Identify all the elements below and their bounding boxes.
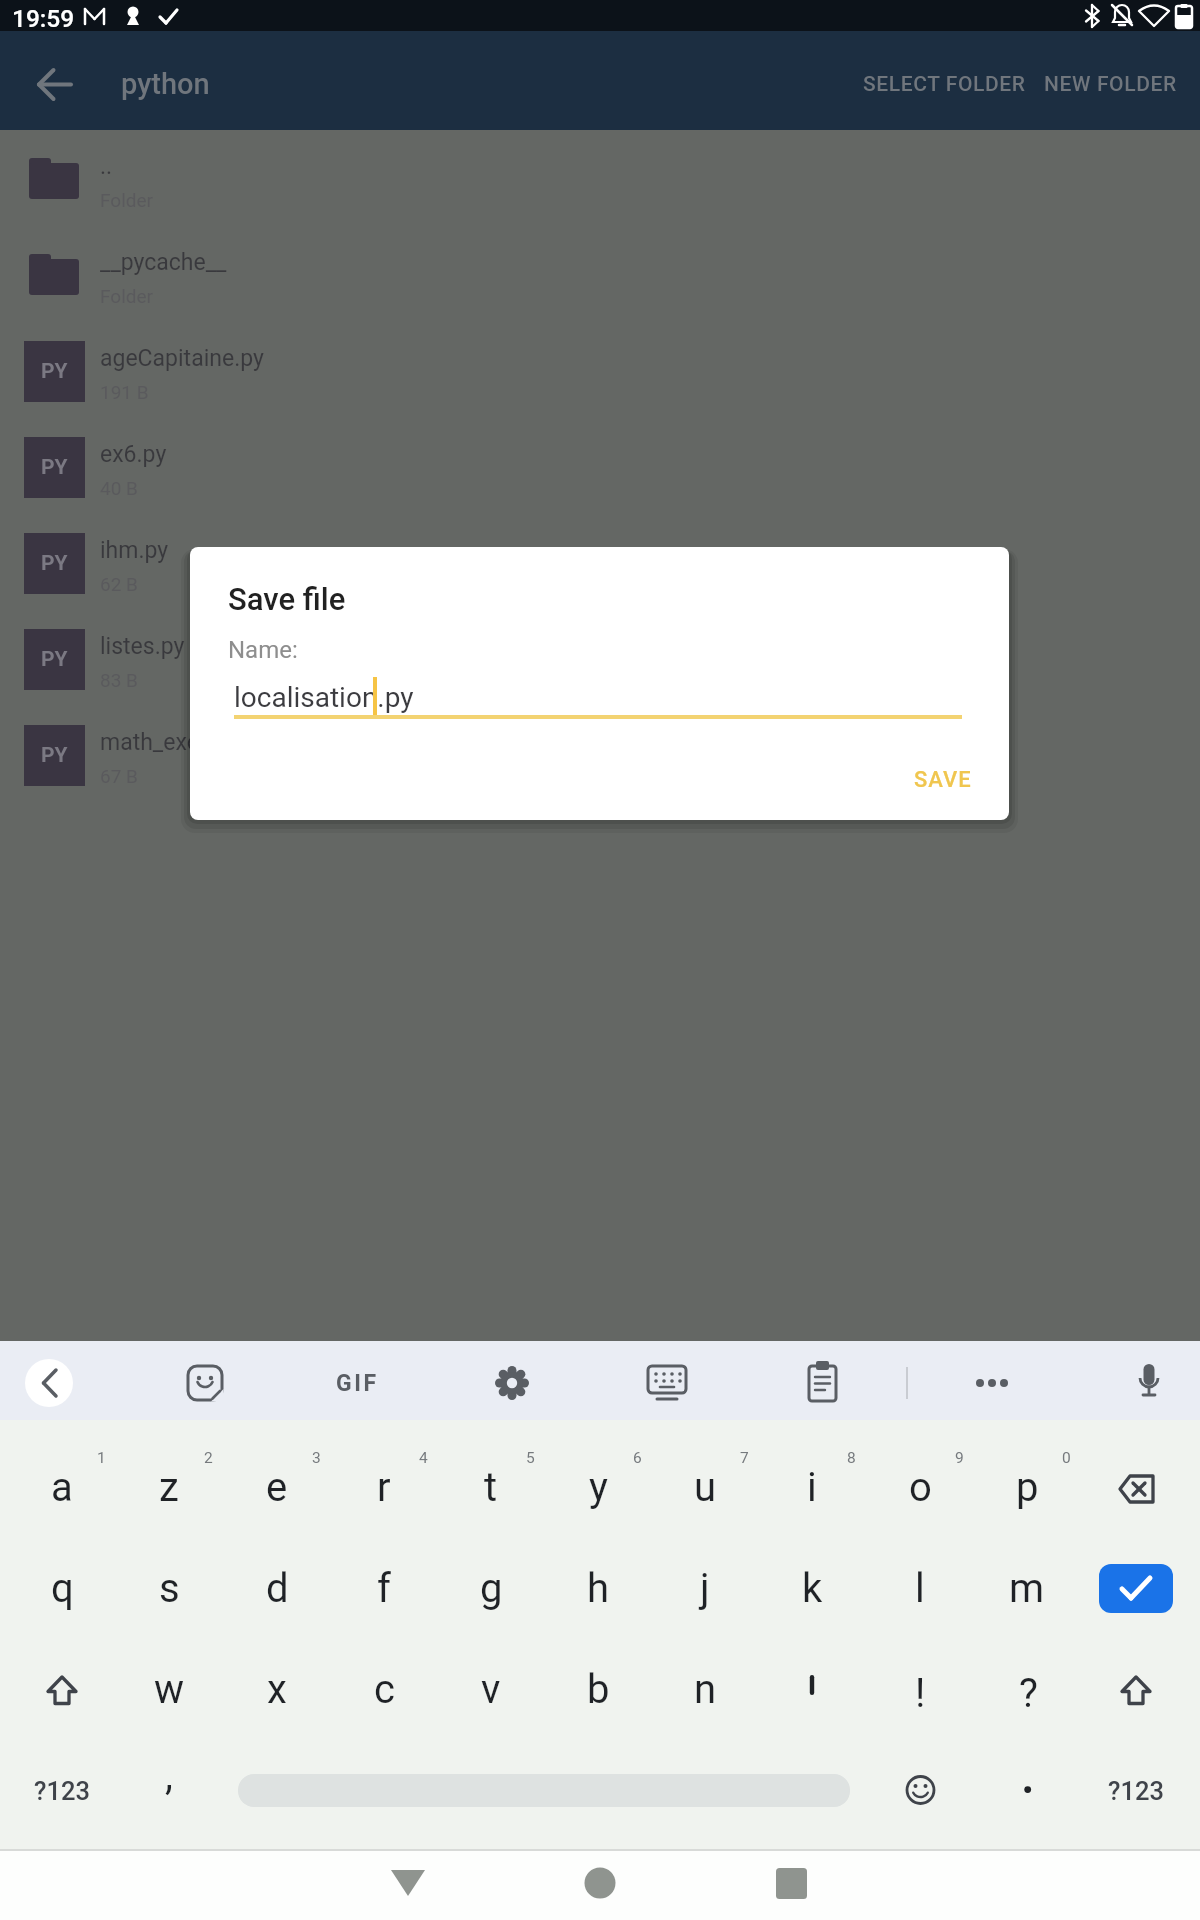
staticText: 191 B — [100, 381, 149, 403]
button[interactable]: x — [224, 1639, 330, 1739]
button[interactable]: d — [224, 1538, 330, 1638]
button[interactable]: SELECT FOLDER — [860, 67, 1026, 101]
button[interactable]: z — [116, 1437, 222, 1537]
staticText: 62 B — [100, 573, 138, 595]
staticText: .. — [100, 153, 113, 180]
button[interactable] — [962, 1353, 1022, 1413]
button[interactable]: ? — [975, 1643, 1081, 1743]
button[interactable] — [792, 1353, 852, 1413]
button[interactable] — [9, 1641, 115, 1741]
button[interactable] — [1083, 1437, 1189, 1537]
button[interactable]: n — [652, 1639, 758, 1739]
button[interactable] — [880, 1741, 960, 1841]
staticText: t — [484, 1464, 498, 1511]
staticText: __pycache__ — [100, 249, 227, 276]
staticText: ! — [915, 1670, 926, 1717]
button[interactable]: ?123 — [1083, 1741, 1189, 1841]
button[interactable] — [0, 518, 1200, 614]
button[interactable] — [0, 710, 1200, 806]
button[interactable]: v — [438, 1639, 544, 1739]
staticText: w — [154, 1666, 185, 1713]
button[interactable]: s — [116, 1538, 222, 1638]
staticText: PY — [41, 743, 68, 768]
staticText: python — [121, 67, 210, 101]
staticText: 67 B — [100, 765, 138, 787]
button[interactable]: , — [116, 1725, 222, 1825]
button[interactable]: ! — [867, 1643, 973, 1743]
staticText: c — [374, 1666, 395, 1713]
button[interactable]: j — [652, 1538, 758, 1638]
button[interactable]: q — [9, 1538, 115, 1638]
button[interactable] — [383, 1858, 433, 1908]
staticText: s — [159, 1565, 180, 1612]
button[interactable] — [0, 230, 1200, 326]
staticText: Save file — [228, 581, 346, 617]
staticText: a — [51, 1464, 73, 1511]
button[interactable] — [575, 1858, 625, 1908]
button[interactable] — [175, 1353, 235, 1413]
button[interactable]: ?123 — [9, 1741, 115, 1841]
button[interactable] — [327, 1353, 387, 1413]
staticText: math_exo.py — [100, 729, 230, 756]
staticText: 19:59 — [12, 4, 75, 33]
staticText: 1 — [97, 1449, 106, 1467]
button[interactable]: b — [545, 1639, 651, 1739]
staticText: ?123 — [34, 1776, 90, 1806]
button[interactable]: c — [331, 1639, 437, 1739]
staticText: 3 — [312, 1449, 321, 1467]
staticText: GIF — [336, 1370, 379, 1397]
button[interactable] — [0, 422, 1200, 518]
button[interactable]: f — [331, 1538, 437, 1638]
button[interactable]: a — [9, 1437, 115, 1537]
button[interactable]: o — [867, 1437, 973, 1537]
staticText: SELECT FOLDER — [863, 72, 1026, 97]
button[interactable]: h — [545, 1538, 651, 1638]
button[interactable] — [766, 1858, 816, 1908]
staticText: 40 B — [100, 477, 138, 499]
button[interactable]: r — [331, 1437, 437, 1537]
button[interactable]: e — [224, 1437, 330, 1537]
button[interactable]: t — [438, 1437, 544, 1537]
staticText: o — [909, 1464, 932, 1511]
button[interactable]: w — [116, 1639, 222, 1739]
button[interactable] — [759, 1641, 865, 1741]
staticText: NEW FOLDER — [1044, 72, 1177, 97]
button[interactable] — [482, 1353, 542, 1413]
staticText: PY — [41, 359, 68, 384]
button[interactable] — [637, 1353, 697, 1413]
staticText: 7 — [740, 1449, 749, 1467]
button[interactable]: i — [759, 1437, 865, 1537]
button[interactable]: l — [867, 1538, 973, 1638]
button[interactable]: p — [974, 1437, 1080, 1537]
button[interactable] — [0, 326, 1200, 422]
button[interactable] — [25, 1359, 73, 1407]
button[interactable] — [25, 50, 85, 110]
button[interactable]: k — [759, 1538, 865, 1638]
button[interactable]: NEW FOLDER — [1000, 67, 1177, 101]
staticText: j — [700, 1565, 710, 1612]
button[interactable]: u — [652, 1437, 758, 1537]
button[interactable] — [0, 134, 1200, 230]
staticText: listes.py — [100, 633, 185, 660]
staticText: 8 — [847, 1449, 856, 1467]
button[interactable]: y — [545, 1437, 651, 1537]
staticText: 4 — [419, 1449, 428, 1467]
button[interactable]: g — [438, 1538, 544, 1638]
staticText: SAVE — [914, 767, 972, 793]
button[interactable] — [1083, 1641, 1189, 1741]
staticText: PY — [41, 455, 68, 480]
button[interactable] — [988, 1741, 1068, 1841]
staticText: f — [377, 1565, 391, 1612]
button[interactable] — [1119, 1353, 1179, 1413]
button[interactable] — [0, 614, 1200, 710]
staticText: 9 — [955, 1449, 964, 1467]
staticText: x — [267, 1666, 287, 1713]
staticText: 5 — [526, 1449, 535, 1467]
button[interactable] — [1099, 1564, 1173, 1613]
staticText: ? — [1019, 1670, 1038, 1717]
button[interactable]: SAVE — [888, 764, 998, 796]
staticText: u — [694, 1464, 717, 1511]
button[interactable]: m — [974, 1538, 1080, 1638]
staticText: z — [159, 1464, 179, 1511]
